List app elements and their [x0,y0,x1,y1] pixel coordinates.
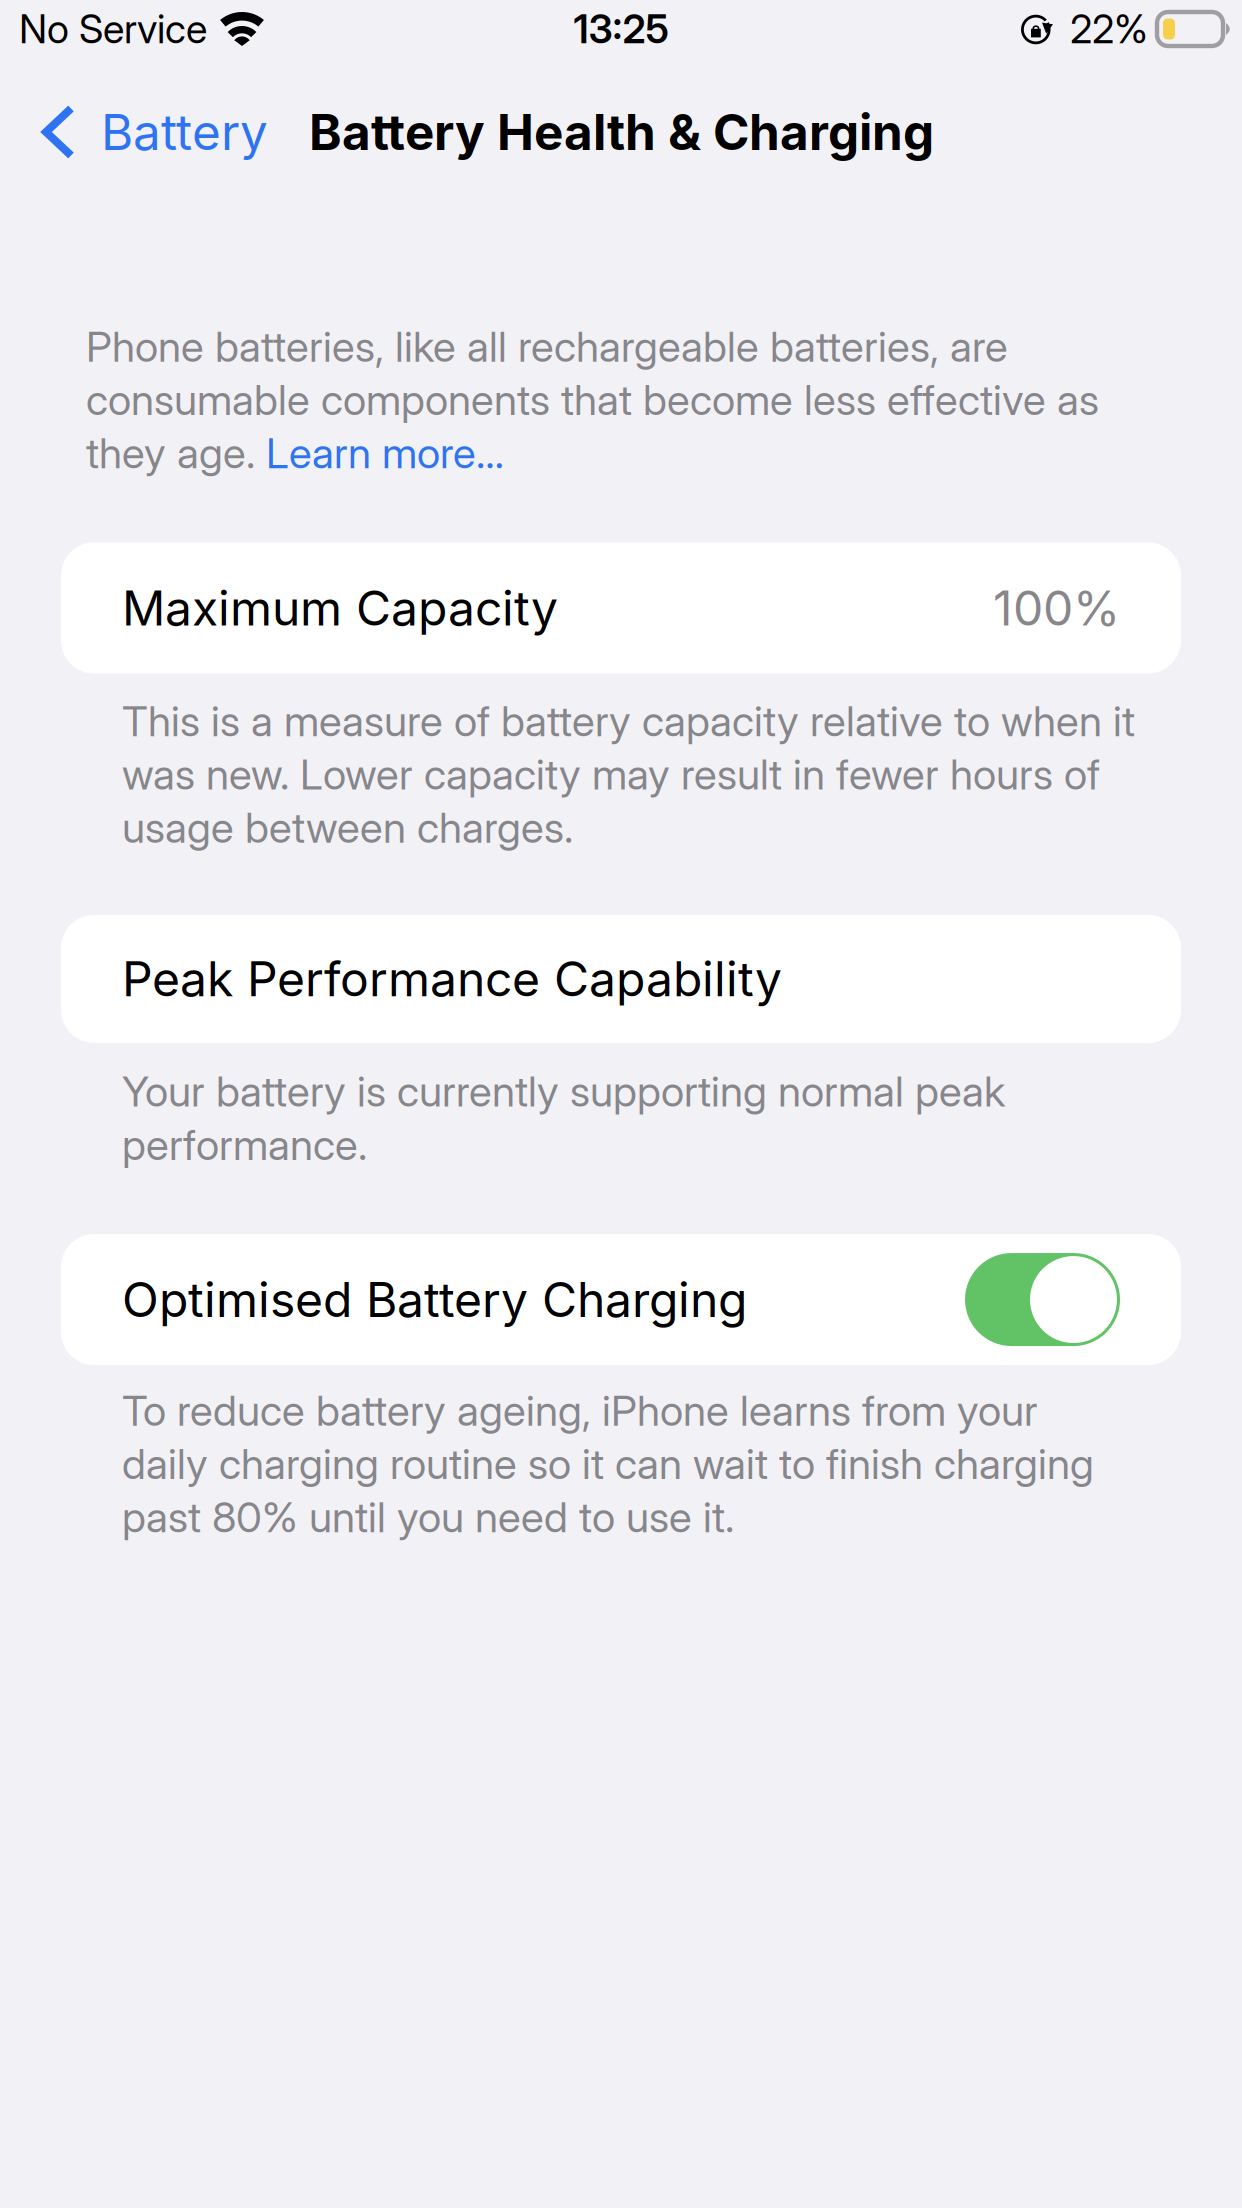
button[interactable]: Battery [0,84,284,180]
staticText: 22% [1070,5,1148,53]
button[interactable]: Optimised Battery Charging [0,1234,1181,1365]
staticText: No Service [19,5,207,53]
staticText: Your battery is currently supporting nor… [122,1066,1005,1117]
staticText: Peak Performance Capability [122,951,782,1007]
staticText: Battery [101,103,268,161]
staticText: 100% [993,580,1120,636]
staticText: To reduce battery ageing, iPhone learns … [122,1385,1038,1436]
staticText: Phone batteries, like all rechargeable b… [86,321,1008,372]
staticText: usage between charges. [122,802,573,853]
staticText: Learn more… [266,428,504,478]
button[interactable]: Learn more… [266,428,504,478]
staticText: Maximum Capacity [122,580,558,636]
staticText: was new. Lower capacity may result in fe… [122,749,1100,800]
staticText: past 80% until you need to use it. [122,1492,734,1542]
staticText: daily charging routine so it can wait to… [122,1438,1094,1489]
staticText: This is a measure of battery capacity re… [122,695,1135,746]
staticText: performance. [122,1119,367,1170]
staticText: Optimised Battery Charging [122,1271,747,1328]
button[interactable]: Maximum Capacity [0,542,1181,673]
staticText: they age. [86,428,266,478]
button[interactable]: Peak Performance Capability [0,915,1181,1043]
staticText: 13:25 [573,5,668,53]
staticText: consumable components that become less e… [86,374,1099,425]
staticText: Battery Health & Charging [309,103,934,161]
